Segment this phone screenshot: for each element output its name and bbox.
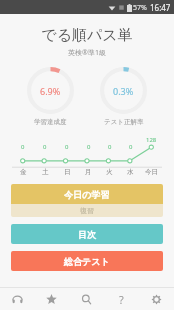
- button[interactable]: Favorites: [34, 288, 69, 310]
- staticText: 0: [65, 143, 69, 151]
- button[interactable]: 復習: [11, 204, 163, 217]
- staticText: テスト正解率: [104, 118, 144, 126]
- button[interactable]: Listening: [0, 288, 34, 310]
- button[interactable]: Settings: [139, 288, 174, 310]
- staticText: 総合テスト: [64, 256, 110, 267]
- staticText: 6.9%: [40, 85, 61, 97]
- staticText: 月: [85, 168, 92, 176]
- staticText: 16:47: [150, 2, 171, 13]
- staticText: 57%: [133, 3, 147, 13]
- staticText: 復習: [80, 206, 94, 215]
- staticText: 今日: [145, 168, 158, 176]
- button[interactable]: 総合テスト: [11, 251, 163, 271]
- staticText: ?: [119, 292, 124, 307]
- staticText: 128: [146, 136, 157, 144]
- staticText: 日: [64, 168, 71, 176]
- staticText: 0: [87, 143, 91, 151]
- staticText: 0: [108, 143, 112, 151]
- staticText: 今日の学習: [64, 189, 110, 200]
- staticText: 0.3%: [113, 85, 134, 97]
- button[interactable]: Search: [69, 288, 104, 310]
- staticText: 火: [106, 168, 113, 176]
- staticText: 英検®準1級: [68, 48, 106, 58]
- button[interactable]: Help: [104, 288, 139, 310]
- button[interactable]: 目次: [11, 224, 163, 244]
- staticText: 学習達成度: [34, 118, 67, 126]
- staticText: 0: [21, 143, 25, 151]
- staticText: 目次: [78, 229, 96, 240]
- staticText: 水: [127, 168, 134, 176]
- staticText: でる順パス単: [41, 26, 133, 45]
- staticText: 金: [20, 168, 27, 176]
- staticText: 0: [43, 143, 47, 151]
- button[interactable]: 今日の学習: [11, 184, 163, 204]
- staticText: 土: [42, 168, 49, 176]
- staticText: 0: [129, 143, 133, 151]
